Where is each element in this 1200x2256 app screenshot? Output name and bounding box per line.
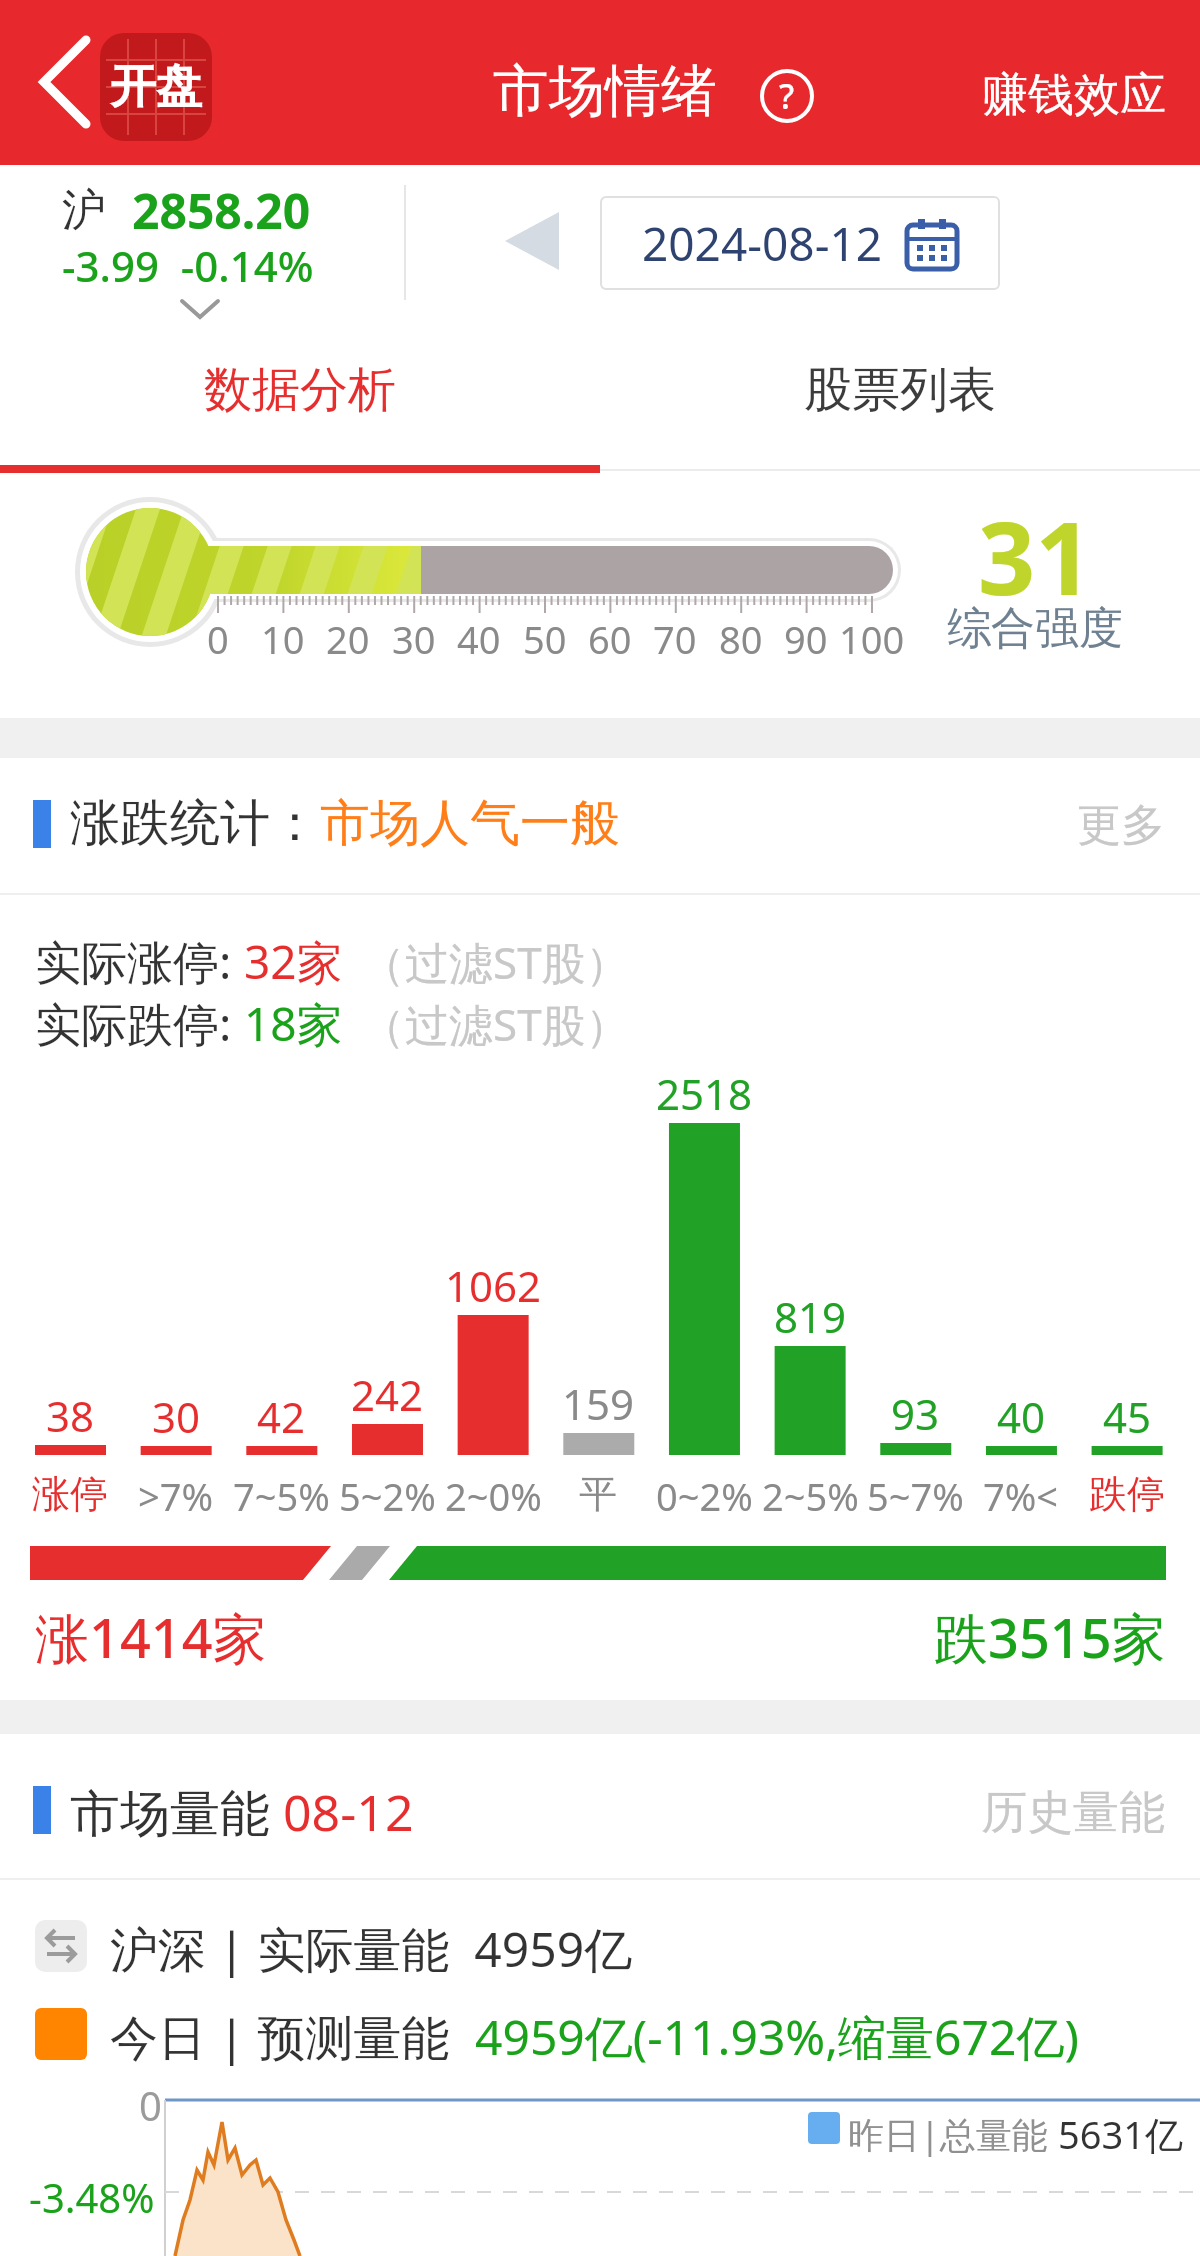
staticText: 2518: [656, 1065, 753, 1122]
staticText: 08-12: [283, 1778, 414, 1846]
staticText: 50: [523, 613, 567, 665]
staticText: 跌停: [1089, 1470, 1165, 1518]
staticText: 18家: [244, 992, 343, 1055]
staticText: 综合强度: [947, 601, 1123, 656]
staticText: 4959亿(-11.93%,缩量672亿): [475, 2004, 1079, 2070]
button[interactable]: ?: [759, 68, 815, 124]
staticText: 100: [839, 613, 905, 665]
staticText: （过滤ST股）: [361, 994, 630, 1054]
staticText: 242: [351, 1366, 424, 1423]
staticText: 7%<: [983, 1470, 1059, 1522]
staticText: 涨跌统计：: [70, 792, 320, 855]
staticText: 10: [261, 613, 305, 665]
staticText: 股票列表: [804, 360, 996, 420]
staticText: 2~0%: [445, 1470, 542, 1522]
staticText: 赚钱效应: [982, 66, 1166, 124]
staticText: 沪深 | 实际量能 4959亿: [110, 1916, 633, 1982]
staticText: 32家: [244, 930, 343, 993]
button[interactable]: 赚钱效应: [900, 66, 1166, 124]
staticText: 0: [139, 2078, 162, 2132]
staticText: ?: [779, 73, 795, 119]
button[interactable]: 数据分析: [100, 360, 500, 420]
staticText: 30: [392, 613, 436, 665]
button[interactable]: [20, 30, 110, 135]
staticText: 实际涨停:: [35, 930, 244, 993]
button[interactable]: 开盘: [100, 33, 212, 141]
staticText: 819: [774, 1288, 847, 1345]
button[interactable]: 股票列表: [700, 360, 1100, 420]
staticText: -3.99 -0.14%: [62, 237, 314, 294]
staticText: 涨停: [32, 1470, 108, 1518]
staticText: 93: [891, 1385, 940, 1442]
staticText: 5~2%: [339, 1470, 436, 1522]
staticText: 昨日|总量能: [848, 2110, 1058, 2159]
staticText: 80: [719, 613, 763, 665]
staticText: 开盘: [110, 58, 202, 116]
staticText: 159: [562, 1375, 635, 1432]
staticText: 涨1414家: [35, 1600, 267, 1674]
staticText: 跌3515家: [934, 1600, 1166, 1674]
staticText: 70: [653, 613, 697, 665]
staticText: 40: [457, 613, 501, 665]
staticText: 45: [1103, 1388, 1152, 1445]
staticText: 历史量能: [981, 1784, 1165, 1842]
button[interactable]: 更多: [1000, 798, 1165, 853]
staticText: 5631亿: [1058, 2108, 1183, 2160]
staticText: 今日 | 预测量能: [110, 2004, 475, 2070]
staticText: 市场量能: [70, 1778, 283, 1846]
staticText: 0~2%: [656, 1470, 753, 1522]
staticText: 数据分析: [204, 360, 396, 420]
staticText: 38: [46, 1387, 95, 1444]
staticText: 0: [207, 613, 229, 665]
staticText: 7~5%: [233, 1470, 330, 1522]
staticText: 平: [579, 1470, 617, 1518]
staticText: 沪: [62, 183, 106, 238]
staticText: 40: [997, 1388, 1046, 1445]
staticText: 30: [152, 1388, 201, 1445]
staticText: 5~7%: [867, 1470, 964, 1522]
staticText: 2858.20: [132, 178, 311, 243]
staticText: 市场情绪: [493, 56, 717, 127]
staticText: 1062: [445, 1257, 542, 1314]
staticText: 60: [588, 613, 632, 665]
staticText: >7%: [138, 1470, 214, 1522]
button[interactable]: 历史量能: [960, 1784, 1165, 1842]
staticText: 90: [784, 613, 828, 665]
staticText: 2024-08-12: [642, 212, 883, 275]
staticText: 更多: [1077, 798, 1165, 853]
staticText: 42: [257, 1388, 306, 1445]
staticText: -3.48%: [29, 2170, 155, 2224]
staticText: 2~5%: [762, 1470, 859, 1522]
staticText: 实际跌停:: [35, 992, 244, 1055]
staticText: （过滤ST股）: [361, 932, 630, 992]
staticText: 市场人气一般: [320, 792, 620, 855]
staticText: 20: [326, 613, 370, 665]
staticText: 31: [978, 488, 1093, 624]
button[interactable]: 2024-08-12: [600, 196, 1000, 290]
button[interactable]: [505, 212, 559, 270]
